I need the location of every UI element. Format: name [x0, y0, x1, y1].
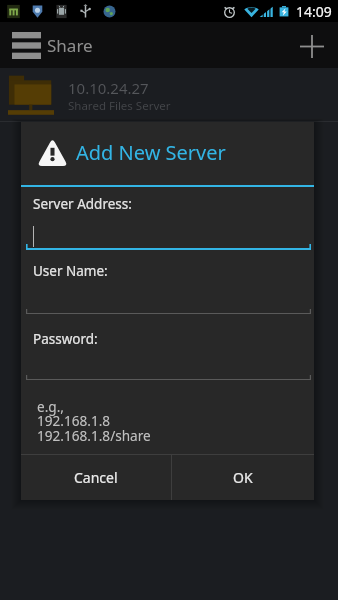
button[interactable]: Cancel	[21, 455, 171, 500]
staticText: e.g., 192.168.1.8 192.168.1.8/share	[37, 397, 151, 445]
staticText: 14:09	[296, 2, 332, 21]
staticText: Add New Server	[76, 139, 226, 166]
button[interactable]: Share	[0, 22, 99, 68]
button[interactable]: 10.10.24.27	[0, 68, 338, 122]
staticText: Shared Files Server	[68, 98, 171, 114]
staticText: Password:	[33, 330, 98, 348]
staticText: OK	[233, 468, 253, 487]
staticText: Share	[47, 34, 93, 57]
staticText: Cancel	[74, 468, 118, 487]
button[interactable]: Add server	[286, 22, 338, 68]
staticText: 10.10.24.27	[68, 78, 149, 98]
staticText: Server Address:	[33, 195, 132, 213]
staticText: User Name:	[33, 262, 108, 280]
button[interactable]: OK	[172, 455, 314, 500]
